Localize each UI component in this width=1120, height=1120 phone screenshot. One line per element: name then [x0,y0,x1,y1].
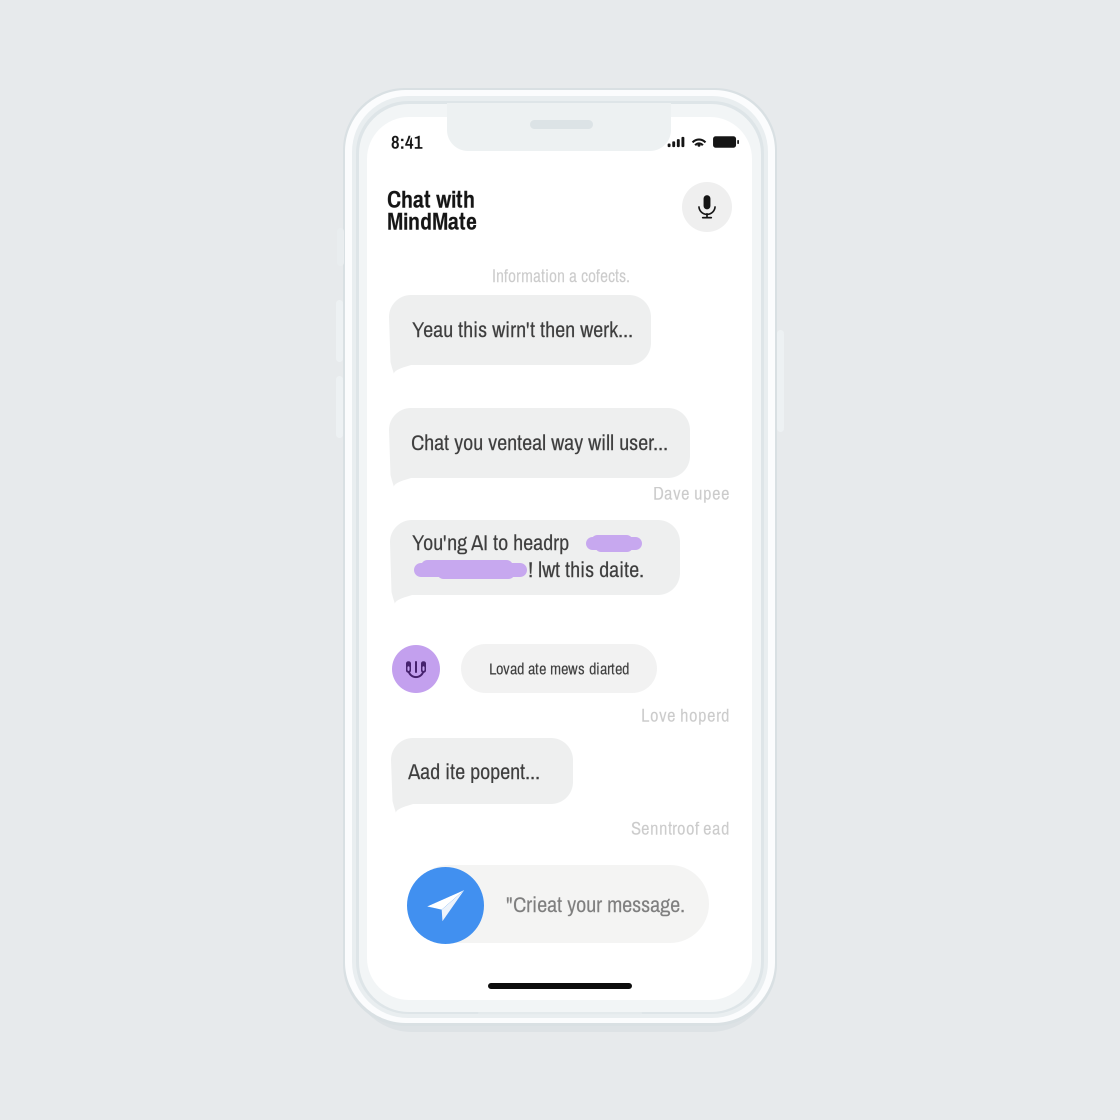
staticText: ! lwt this daite. [528,554,644,584]
staticText: You'ng AI to headrp [412,527,569,557]
staticText: Yeau this wirn't then werk... [412,314,633,344]
button[interactable] [389,295,651,374]
button[interactable] [390,520,680,604]
staticText: Dave upee [653,480,730,505]
staticText: Information a cofects. [492,264,630,288]
button[interactable]: Voice input [682,182,732,232]
staticText: Lovad ate mews diarted [489,657,629,680]
button[interactable]: Send [407,867,484,944]
button[interactable] [391,738,573,813]
staticText: Love hoperd [641,702,730,727]
staticText: Senntroof ead [631,815,730,840]
staticText: "Crieat your message. [506,889,685,919]
staticText: Aad ite popent... [408,756,540,786]
staticText: 8:41 [391,129,423,154]
staticText: MindMate [387,205,477,237]
button[interactable]: Lovad ate mews diarted [461,644,657,693]
button[interactable] [389,408,690,487]
button[interactable]: "Crieat your message. [410,865,709,943]
staticText: Chat with [387,183,475,215]
staticText: Chat you venteal way will user... [411,427,668,457]
